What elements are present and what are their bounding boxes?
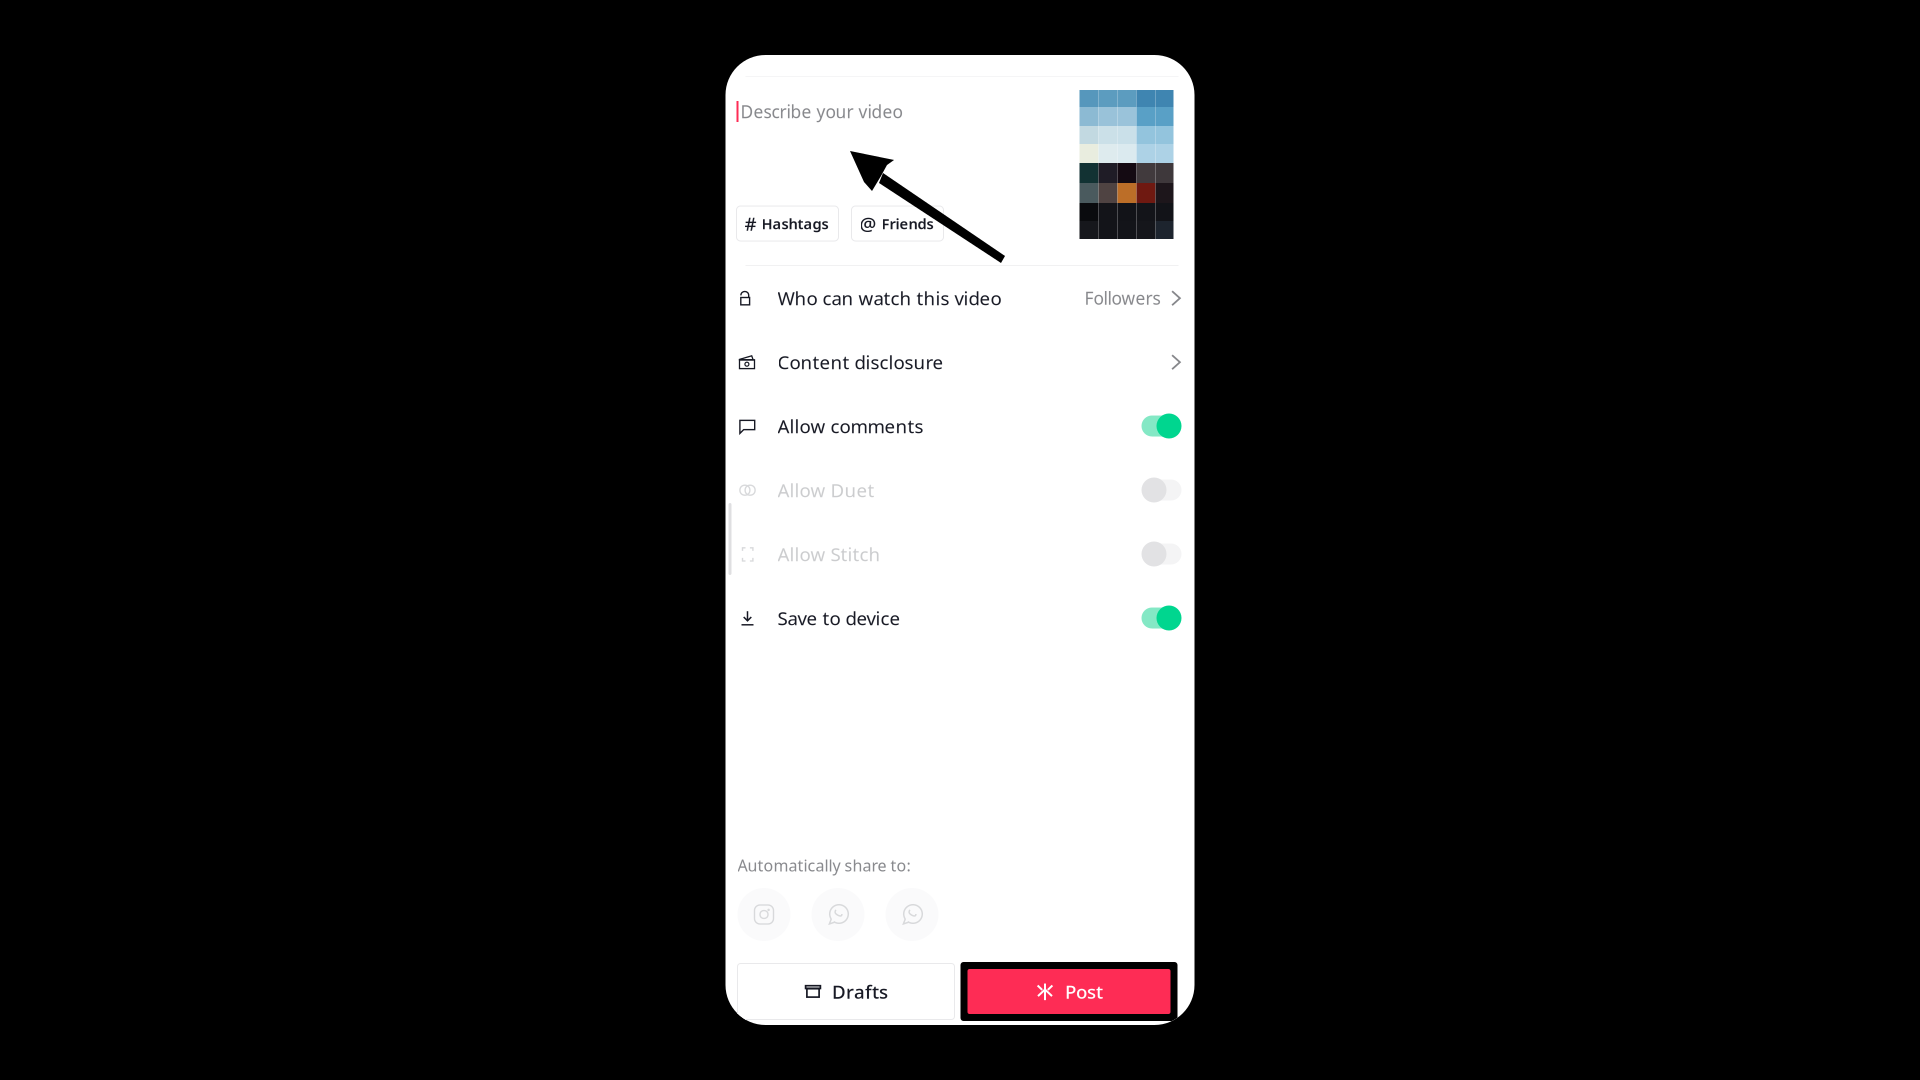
staticText: Describe your video [740, 100, 902, 123]
button[interactable]: Allow Stitch [725, 522, 1194, 586]
staticText: Friends [881, 214, 933, 233]
button[interactable]: Allow comments [725, 394, 1194, 458]
staticText: Post [1065, 979, 1103, 1004]
staticText: Allow Duet [777, 478, 874, 502]
staticText: # [744, 211, 756, 236]
button[interactable]: Save to device [725, 586, 1194, 650]
staticText: Content disclosure [777, 350, 943, 374]
staticText: Who can watch this video [777, 286, 1001, 310]
button[interactable]: Allow Duet [725, 458, 1194, 522]
staticText: Followers [1084, 286, 1160, 309]
staticText: Allow Stitch [777, 542, 880, 566]
staticText: Drafts [832, 979, 888, 1004]
button[interactable]: Post [960, 962, 1177, 1021]
button[interactable]: @ [851, 206, 943, 241]
button[interactable]: Content disclosure [725, 330, 1194, 394]
button[interactable]: Share to WhatsApp [811, 888, 864, 941]
button[interactable]: Share to WhatsApp Status [885, 888, 938, 941]
button[interactable]: # [736, 206, 838, 241]
staticText: Allow comments [777, 414, 923, 438]
staticText: Hashtags [761, 214, 828, 233]
staticText: @ [859, 211, 876, 236]
staticText: Automatically share to: [737, 855, 910, 876]
button[interactable]: Share to Instagram [737, 888, 790, 941]
button[interactable]: Drafts [737, 963, 954, 1019]
button[interactable]: Who can watch this video [725, 266, 1194, 330]
staticText: Save to device [777, 606, 900, 630]
